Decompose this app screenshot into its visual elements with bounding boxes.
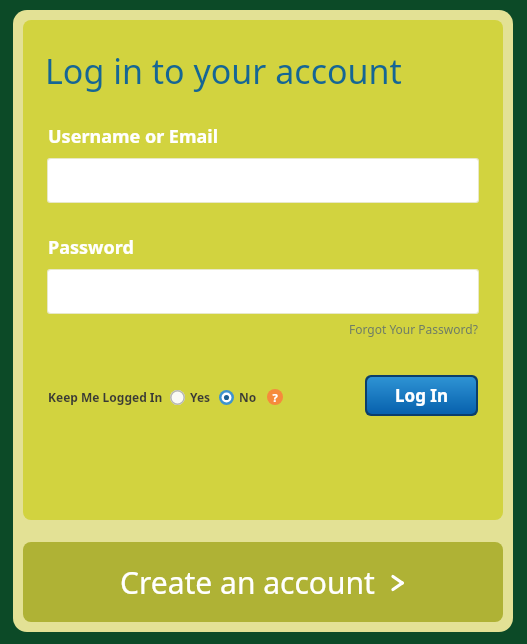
- button[interactable]: Help: [267, 389, 283, 405]
- staticText: Create an account: [120, 562, 375, 603]
- staticText: ?: [272, 390, 278, 405]
- button[interactable]: Create an account: [23, 542, 503, 622]
- staticText: Yes: [190, 389, 211, 405]
- button[interactable]: Log In: [367, 377, 476, 414]
- staticText: Password: [48, 235, 134, 260]
- staticText: Log In: [395, 384, 448, 407]
- button[interactable]: No selected: [219, 390, 234, 405]
- staticText: Forgot Your Password?: [349, 321, 478, 337]
- staticText: No: [239, 389, 257, 405]
- button[interactable]: Yes: [170, 390, 185, 405]
- button[interactable]: Forgot Your Password?: [349, 321, 478, 337]
- staticText: Username or Email: [48, 124, 219, 149]
- staticText: Keep Me Logged In: [48, 389, 163, 405]
- staticText: Log in to your account: [45, 48, 402, 94]
